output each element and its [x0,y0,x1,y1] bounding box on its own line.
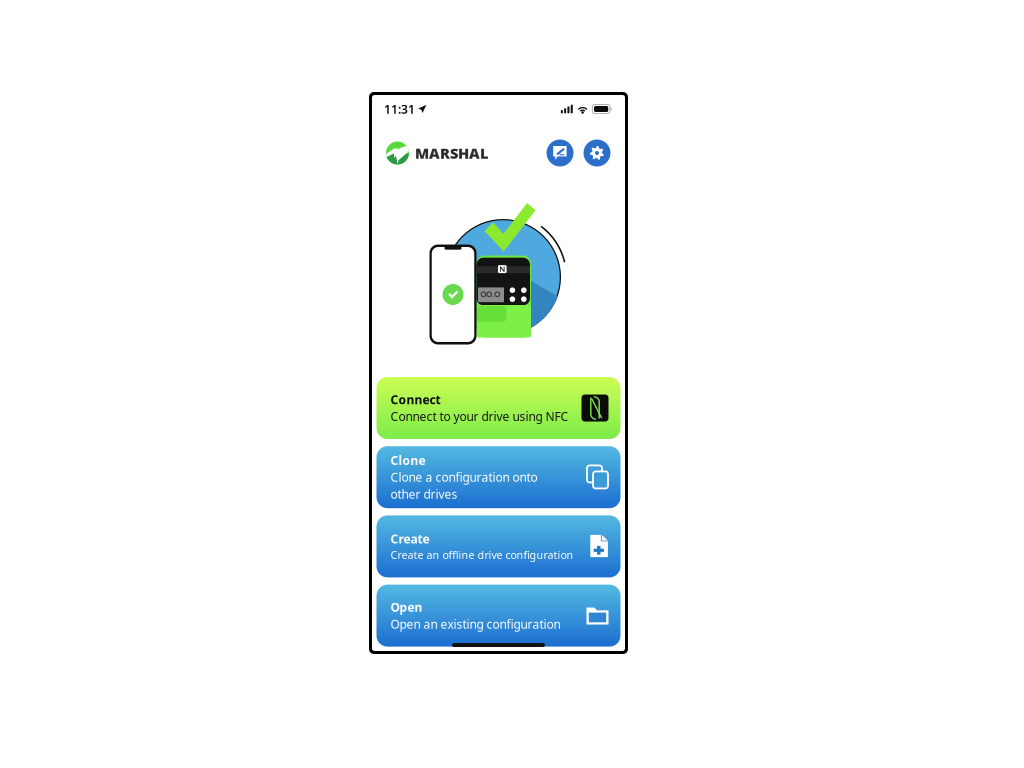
staticText: Open an existing configuration [390,616,560,632]
staticText: Connect [390,392,440,407]
staticText: other drives [390,486,457,502]
staticText: Open [390,599,422,615]
staticText: Create an offline drive configuration [390,548,573,562]
button[interactable]: Open [376,585,620,647]
button[interactable]: Clone [376,446,620,508]
staticText: Create [390,531,429,547]
staticText: MARSHAL [415,143,489,163]
button[interactable]: Create [376,515,620,577]
staticText: 11:31 [384,101,415,117]
button[interactable]: Settings [583,139,610,166]
staticText: Connect to your drive using NFC [390,408,568,424]
staticText: Clone a configuration onto [390,469,537,485]
button[interactable]: Feedback [546,139,573,166]
staticText: Clone [390,452,425,468]
button[interactable]: Connect [376,377,620,439]
